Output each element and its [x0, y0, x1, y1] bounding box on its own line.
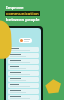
- button[interactable]: [8, 59, 39, 64]
- staticText: between people: [6, 17, 40, 23]
- button[interactable]: [8, 89, 39, 94]
- staticText: Improve: [6, 5, 24, 11]
- button[interactable]: [8, 47, 39, 52]
- button[interactable]: [8, 65, 39, 70]
- button[interactable]: [8, 95, 39, 100]
- button[interactable]: [8, 83, 39, 88]
- button[interactable]: [8, 53, 39, 58]
- button[interactable]: [8, 71, 39, 76]
- button[interactable]: [8, 77, 39, 82]
- button[interactable]: [19, 38, 32, 43]
- staticText: communication: [6, 11, 39, 16]
